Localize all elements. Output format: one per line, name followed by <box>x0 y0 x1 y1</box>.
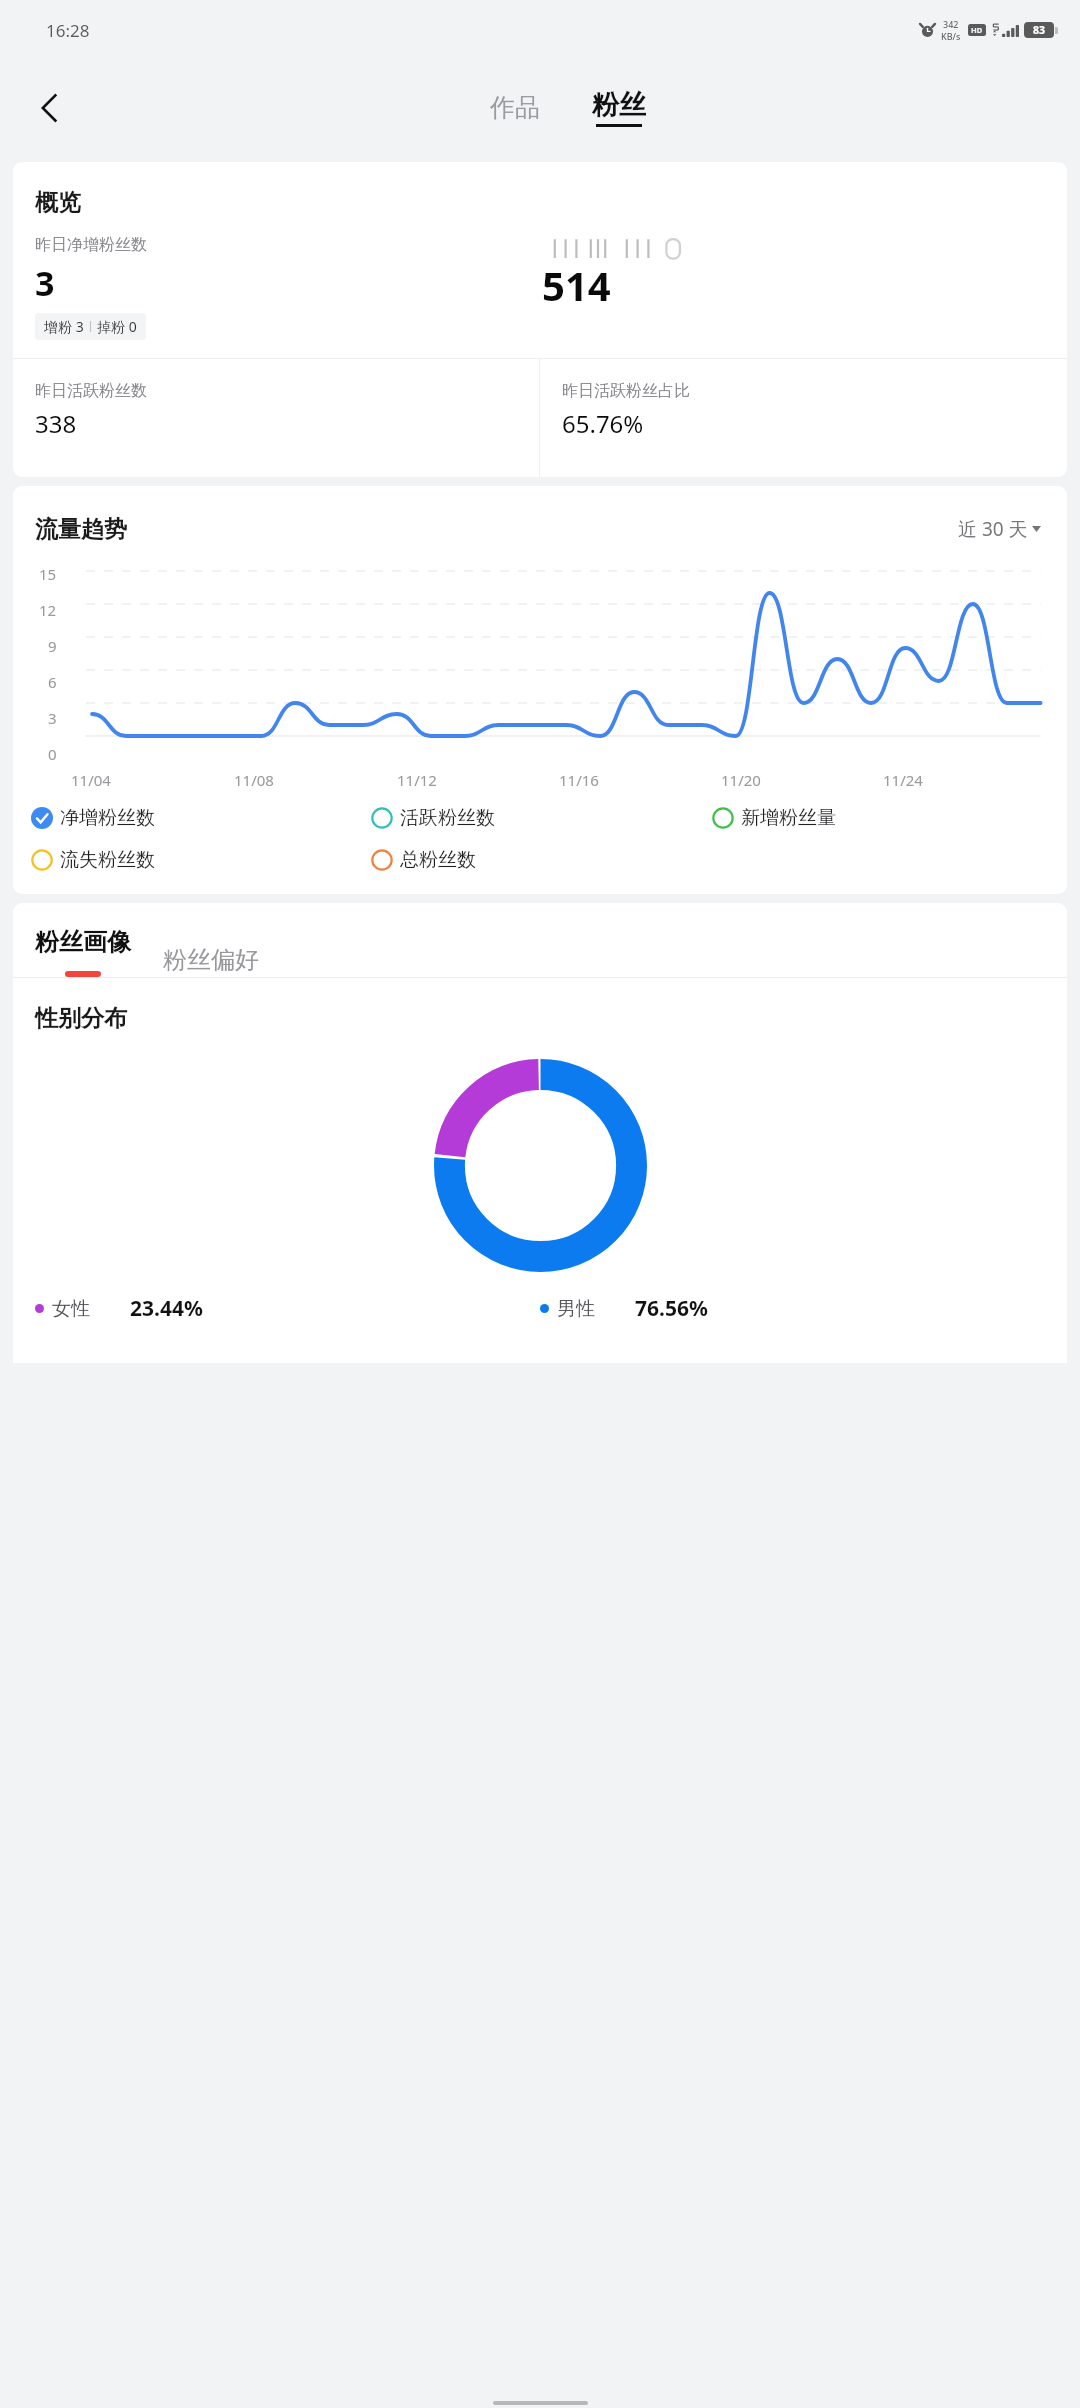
staticText: 昨日净增粉丝数 <box>35 235 147 255</box>
staticText: 76.56% <box>635 1294 708 1323</box>
staticText: 昨日活跃粉丝数 <box>35 381 147 401</box>
staticText: 净增粉丝数 <box>60 806 155 830</box>
button[interactable]: 作品 <box>474 84 556 131</box>
button[interactable]: Back <box>22 80 78 136</box>
staticText: 增粉 3 <box>44 317 84 336</box>
staticText: 65.76% <box>562 407 644 440</box>
staticText: 男性 <box>557 1297 595 1321</box>
staticText: 11/24 <box>883 770 923 790</box>
staticText: 3 <box>35 260 55 306</box>
staticText: 16:28 <box>46 19 90 42</box>
staticText: 11/20 <box>721 770 761 790</box>
staticText: 粉丝偏好 <box>163 945 259 975</box>
staticText: 作品 <box>490 92 540 123</box>
button[interactable]: 总粉丝数 <box>371 846 476 874</box>
staticText: 昨日活跃粉丝占比 <box>562 381 690 401</box>
staticText: 338 <box>35 407 77 440</box>
staticText: 342 <box>943 18 959 30</box>
staticText: 6 <box>48 672 57 692</box>
staticText: 掉粉 0 <box>97 317 137 336</box>
staticText: 性别分布 <box>35 1004 127 1033</box>
staticText: 12 <box>39 600 57 620</box>
staticText: 11/12 <box>397 770 437 790</box>
staticText: 概览 <box>35 188 81 217</box>
staticText: 11/16 <box>559 770 599 790</box>
button[interactable]: 活跃粉丝数 <box>371 804 495 832</box>
staticText: 15 <box>39 564 57 584</box>
button[interactable]: 粉丝 <box>582 84 656 131</box>
button[interactable]: 粉丝偏好 <box>159 943 263 977</box>
staticText: 流失粉丝数 <box>60 848 155 872</box>
staticText: 23.44% <box>130 1294 203 1323</box>
staticText: 0 <box>48 744 57 764</box>
staticText: 近 30 天 <box>958 516 1028 542</box>
staticText: 11/04 <box>71 770 111 790</box>
button[interactable]: 新增粉丝量 <box>712 804 836 832</box>
staticText: 514 <box>542 258 611 312</box>
staticText: 活跃粉丝数 <box>400 806 495 830</box>
staticText: 女性 <box>52 1297 90 1321</box>
staticText: 总粉丝数 <box>400 848 476 872</box>
staticText: 粉丝画像 <box>35 927 131 957</box>
button[interactable]: 流失粉丝数 <box>31 846 155 874</box>
staticText: HD <box>971 25 983 35</box>
staticText: 11/08 <box>234 770 274 790</box>
staticText: 粉丝 <box>592 88 646 122</box>
staticText: 3 <box>48 708 57 728</box>
button[interactable]: 粉丝画像 <box>31 927 135 977</box>
button[interactable]: 净增粉丝数 <box>31 804 155 832</box>
staticText: KB/s <box>941 30 961 42</box>
button[interactable]: 近 30 天 <box>954 512 1045 546</box>
staticText: 流量趋势 <box>35 515 127 544</box>
staticText: 9 <box>48 636 57 656</box>
staticText: 新增粉丝量 <box>741 806 836 830</box>
staticText: 83 <box>1033 23 1046 37</box>
